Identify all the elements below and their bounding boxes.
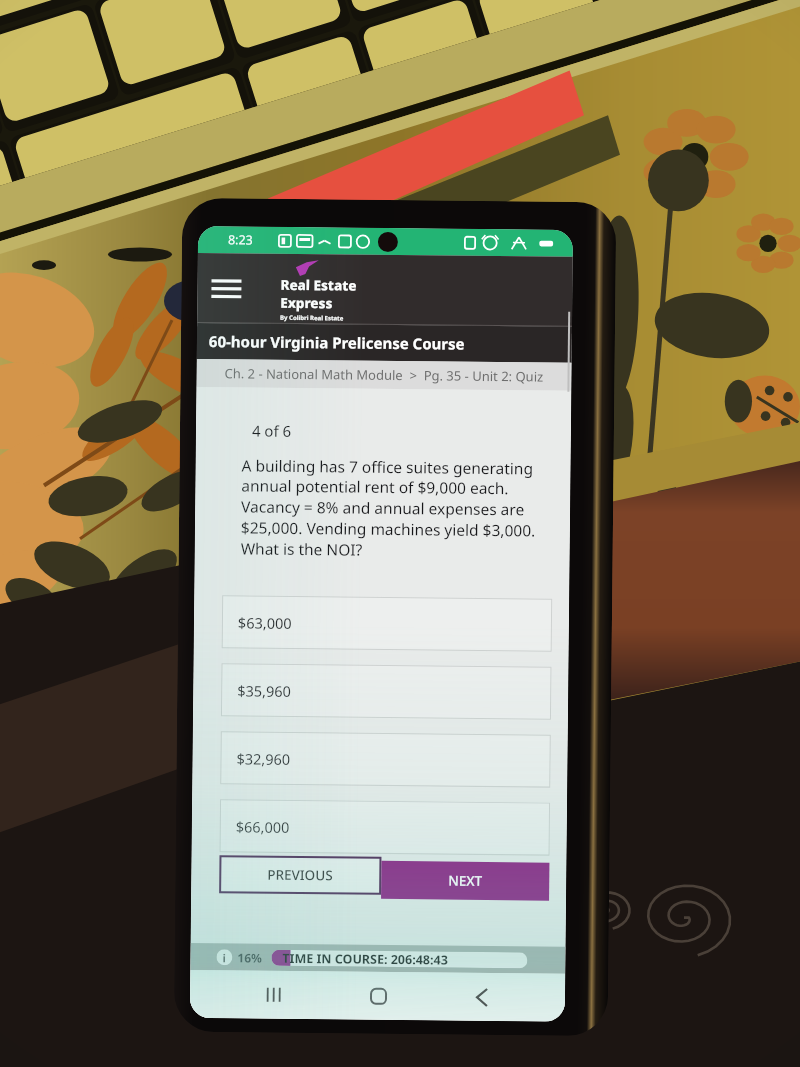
staticText: By Colibri Real Estate (280, 314, 344, 322)
staticText: Ch. 2 - National Math Module > Pg. 35 - … (224, 364, 544, 385)
staticText: $66,000 (236, 816, 290, 837)
staticText: 8:23 (228, 231, 253, 248)
staticText: Real Estate (280, 276, 357, 295)
button[interactable]: Back (461, 976, 503, 1018)
staticText: PREVIOUS (267, 866, 333, 884)
staticText: $35,960 (237, 680, 291, 701)
button[interactable]: $35,960 (221, 663, 551, 720)
button[interactable]: $32,960 (220, 731, 551, 788)
button[interactable]: PREVIOUS (219, 855, 381, 895)
button[interactable]: Recents (252, 973, 294, 1016)
button[interactable]: Menu (205, 267, 248, 309)
staticText: $63,000 (238, 612, 292, 633)
staticText: Express (280, 294, 333, 312)
staticText: i (222, 950, 226, 965)
staticText: $32,960 (236, 748, 291, 769)
button[interactable]: $66,000 (219, 799, 550, 856)
staticText: NEXT (448, 872, 482, 890)
staticText: A building has 7 office suites generatin… (241, 454, 559, 563)
staticText: 60-hour Virginia Prelicense Course (209, 331, 465, 354)
staticText: TIME IN COURSE: 206:48:43 (282, 950, 448, 967)
staticText: 4 of 6 (252, 420, 292, 441)
button[interactable]: Home (357, 975, 399, 1017)
button[interactable]: $63,000 (222, 595, 552, 652)
button[interactable]: NEXT (381, 861, 549, 901)
staticText: 16% (237, 949, 262, 966)
